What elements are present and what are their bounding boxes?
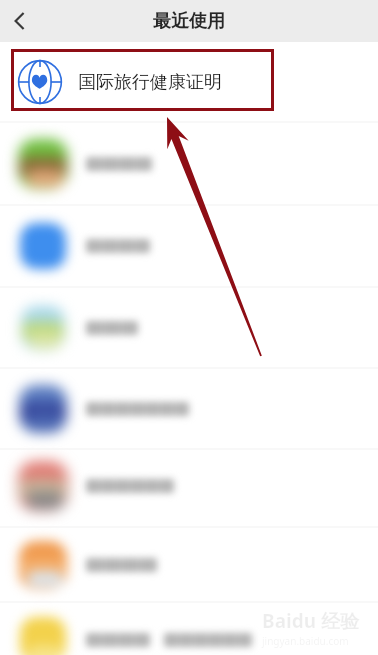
button[interactable]	[0, 294, 378, 362]
staticText: Baidu 经验	[262, 608, 359, 634]
staticText: jingyan.baidu.com	[262, 634, 349, 648]
staticText: 最近使用	[153, 10, 225, 33]
button[interactable]	[0, 130, 378, 198]
button[interactable]	[0, 606, 378, 655]
button[interactable]: Back	[0, 1, 40, 41]
button[interactable]	[0, 375, 378, 443]
button[interactable]	[0, 452, 378, 520]
button[interactable]: 国际旅行健康证明	[0, 42, 378, 122]
button[interactable]	[0, 531, 378, 599]
button[interactable]	[0, 212, 378, 280]
staticText: 国际旅行健康证明	[78, 71, 222, 94]
